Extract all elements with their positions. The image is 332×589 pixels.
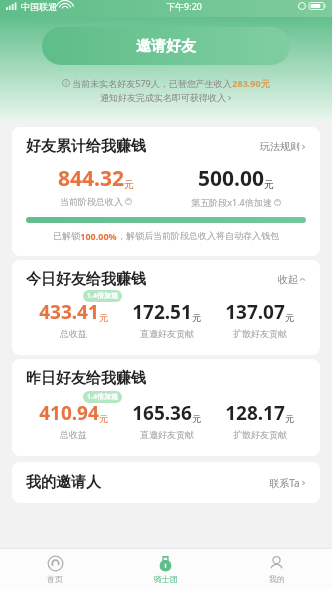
staticText: 元 (124, 178, 134, 191)
staticText: 844.32 (58, 164, 124, 193)
staticText: 总收益 (60, 429, 87, 440)
staticText: 扩散好友贡献 (233, 429, 287, 440)
staticText: 元 (264, 178, 274, 191)
staticText: 我的邀请人 (26, 473, 101, 492)
staticText: 首页 (47, 574, 63, 584)
button[interactable]: 玩法规则 (260, 140, 306, 153)
staticText: 元 (192, 413, 201, 424)
staticText: 通知好友完成实名即可获得收入 (100, 92, 226, 103)
staticText: 当前未实名好友579人，已替您产生收入 (72, 77, 232, 89)
staticText: 今日好友给我赚钱 (26, 270, 146, 289)
staticText: 联系Ta (269, 476, 300, 490)
staticText: 410.94 (39, 400, 99, 426)
staticText: 玩法规则 (260, 140, 300, 153)
staticText: 元 (99, 312, 108, 323)
staticText: 我的 (269, 574, 285, 584)
staticText: 165.36 (132, 400, 192, 426)
staticText: 第五阶段x1.4倍加速 (191, 196, 272, 208)
staticText: 收起 (278, 273, 298, 286)
staticText: 邀请好友 (136, 37, 196, 56)
button[interactable]: 首页 (0, 549, 110, 589)
staticText: 283.90元 (232, 77, 270, 89)
staticText: 元 (99, 413, 108, 424)
staticText: ，解锁后当前阶段总收入将自动存入钱包 (117, 230, 279, 241)
staticText: 100.00% (80, 230, 117, 242)
staticText: 扩散好友贡献 (233, 328, 287, 339)
staticText: 元 (285, 312, 294, 323)
staticText: 下午9:20 (166, 0, 202, 12)
staticText: 元 (285, 413, 294, 424)
staticText: 1.4倍加速 (87, 291, 118, 301)
staticText: 1.4倍加速 (87, 392, 118, 402)
button[interactable]: 收起 (278, 273, 306, 286)
staticText: 已解锁 (53, 230, 80, 241)
button[interactable]: 通知好友完成实名即可获得收入 (100, 92, 232, 103)
staticText: 500.00 (198, 164, 264, 193)
button[interactable]: 我的 (221, 549, 332, 589)
button[interactable]: 邀请好友 (42, 27, 290, 65)
button[interactable]: 我的邀请人 (12, 462, 320, 503)
staticText: 直邀好友贡献 (140, 429, 194, 440)
staticText: 433.41 (39, 299, 99, 325)
staticText: 137.07 (225, 299, 285, 325)
staticText: 骑士团 (154, 574, 178, 584)
staticText: 128.17 (225, 400, 285, 426)
button[interactable]: 骑士团 (110, 549, 221, 589)
staticText: 中国联通 (21, 1, 57, 12)
staticText: 好友累计给我赚钱 (26, 137, 146, 156)
staticText: 直邀好友贡献 (140, 328, 194, 339)
staticText: 元 (192, 312, 201, 323)
staticText: 总收益 (60, 328, 87, 339)
staticText: 昨日好友给我赚钱 (26, 369, 146, 388)
staticText: 172.51 (132, 299, 192, 325)
staticText: 当前阶段总收入 (60, 196, 123, 207)
